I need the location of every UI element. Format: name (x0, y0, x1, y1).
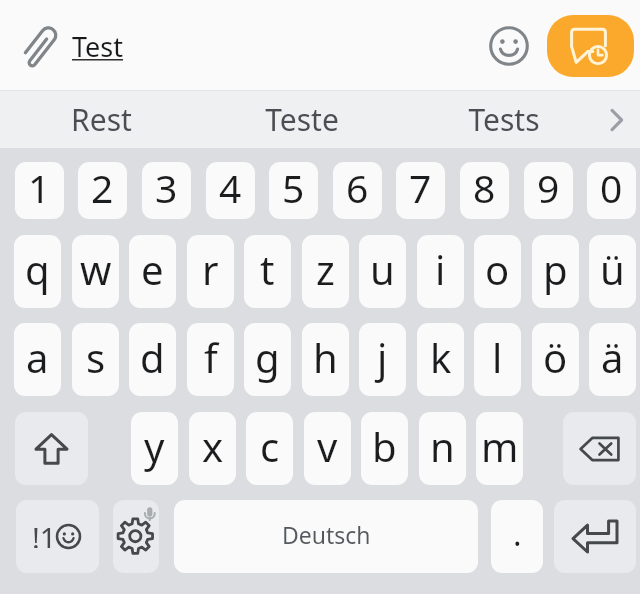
button[interactable]: Deutsch (174, 500, 478, 573)
staticText: p (543, 242, 568, 296)
button[interactable]: e (129, 235, 176, 308)
button[interactable]: 2 (78, 162, 127, 219)
button[interactable]: x (189, 412, 236, 485)
staticText: y (144, 419, 165, 473)
button[interactable]: n (419, 412, 466, 485)
button[interactable]: c (246, 412, 293, 485)
staticText: 7 (409, 162, 432, 214)
button[interactable]: d (129, 323, 176, 396)
staticText: ä (601, 330, 624, 384)
button[interactable]: h (302, 323, 349, 396)
staticText: 4 (219, 162, 242, 214)
staticText: 6 (346, 162, 369, 214)
button[interactable]: 3 (142, 162, 191, 219)
button[interactable]: 7 (396, 162, 445, 219)
button[interactable]: b (361, 412, 408, 485)
staticText: e (141, 242, 164, 296)
staticText: k (430, 330, 452, 384)
staticText: d (140, 330, 165, 384)
staticText: 8 (473, 162, 496, 214)
staticText: n (430, 419, 455, 473)
button[interactable]: r (187, 235, 234, 308)
button[interactable]: 9 (524, 162, 573, 219)
staticText: l (492, 330, 503, 384)
button[interactable]: Tests (409, 91, 599, 148)
staticText: . (513, 512, 522, 556)
button[interactable]: k (417, 323, 464, 396)
button[interactable]: s (72, 323, 119, 396)
staticText: 1 (28, 162, 51, 214)
staticText: Tests (468, 99, 540, 140)
staticText: c (260, 419, 280, 473)
staticText: ö (543, 330, 568, 384)
button[interactable]: Rest (6, 91, 196, 148)
button[interactable]: 1 (15, 162, 64, 219)
button[interactable]: i (417, 235, 464, 308)
button[interactable]: Attachment (6, 12, 74, 80)
staticText: Deutsch (282, 519, 371, 550)
button[interactable]: Teste (207, 91, 397, 148)
staticText: r (202, 242, 219, 296)
button[interactable]: 6 (333, 162, 382, 219)
button[interactable]: Backspace (563, 412, 636, 485)
staticText: 3 (155, 162, 178, 214)
staticText: j (377, 330, 388, 384)
button[interactable]: ä (589, 323, 636, 396)
button[interactable]: Schedule message (547, 15, 634, 77)
button[interactable]: a (14, 323, 61, 396)
button[interactable]: q (14, 235, 61, 308)
button[interactable]: p (532, 235, 579, 308)
button[interactable]: Symbols and emoji (16, 500, 99, 573)
staticText: m (481, 419, 519, 473)
staticText: Test (72, 28, 124, 65)
staticText: v (317, 419, 338, 473)
staticText: ü (600, 242, 625, 296)
staticText: !1 (32, 518, 57, 548)
staticText: b (372, 419, 397, 473)
button[interactable]: 5 (269, 162, 318, 219)
staticText: z (316, 242, 335, 296)
button[interactable]: v (304, 412, 351, 485)
staticText: a (26, 330, 49, 384)
button[interactable]: j (359, 323, 406, 396)
staticText: 0 (600, 162, 623, 214)
button[interactable]: l (474, 323, 521, 396)
staticText: q (25, 242, 50, 296)
staticText: 2 (91, 162, 114, 214)
staticText: x (202, 419, 224, 473)
button[interactable]: 0 (587, 162, 636, 219)
button[interactable]: u (359, 235, 406, 308)
button[interactable]: 8 (460, 162, 509, 219)
staticText: w (80, 242, 112, 296)
staticText: 5 (282, 162, 305, 214)
button[interactable]: . (491, 500, 543, 573)
staticText: t (260, 242, 275, 296)
button[interactable]: t (244, 235, 291, 308)
button[interactable]: More suggestions (592, 91, 640, 148)
staticText: u (370, 242, 395, 296)
button[interactable]: y (131, 412, 178, 485)
staticText: o (485, 242, 510, 296)
button[interactable]: Settings (113, 500, 159, 573)
button[interactable]: Enter (554, 500, 636, 573)
button[interactable]: ü (589, 235, 636, 308)
staticText: Teste (265, 99, 339, 140)
staticText: f (204, 330, 218, 384)
button[interactable]: g (244, 323, 291, 396)
staticText: Rest (71, 99, 132, 140)
staticText: h (313, 330, 338, 384)
staticText: g (255, 330, 280, 384)
button[interactable]: Shift (15, 412, 88, 485)
button[interactable]: f (187, 323, 234, 396)
staticText: s (86, 330, 106, 384)
button[interactable]: o (474, 235, 521, 308)
staticText: 9 (537, 162, 560, 214)
button[interactable]: m (476, 412, 523, 485)
button[interactable]: z (302, 235, 349, 308)
button[interactable]: w (72, 235, 119, 308)
button[interactable]: ö (532, 323, 579, 396)
button[interactable]: 4 (206, 162, 255, 219)
staticText: i (435, 242, 446, 296)
button[interactable]: Emoji (487, 24, 531, 68)
